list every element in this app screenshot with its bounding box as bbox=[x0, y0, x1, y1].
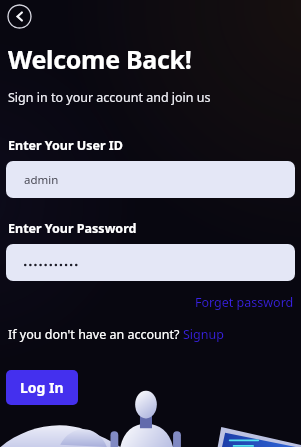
button[interactable]: Forget password bbox=[195, 294, 294, 311]
staticText: Forget password bbox=[195, 294, 294, 311]
staticText: Signup bbox=[183, 326, 224, 343]
staticText: Log In bbox=[20, 378, 64, 397]
staticText: Welcome Back! bbox=[8, 42, 192, 76]
button[interactable]: Log In bbox=[6, 370, 78, 405]
button[interactable]: admin bbox=[6, 161, 295, 198]
button[interactable] bbox=[6, 244, 295, 281]
staticText: admin bbox=[24, 172, 59, 188]
staticText: Sign in to your account and join us bbox=[8, 89, 211, 106]
staticText: Enter Your User ID bbox=[8, 137, 123, 154]
staticText: Enter Your Password bbox=[8, 220, 137, 237]
button[interactable]: Back bbox=[7, 4, 32, 29]
button[interactable]: Signup bbox=[183, 326, 224, 343]
staticText: If you don't have an account? bbox=[8, 326, 183, 343]
